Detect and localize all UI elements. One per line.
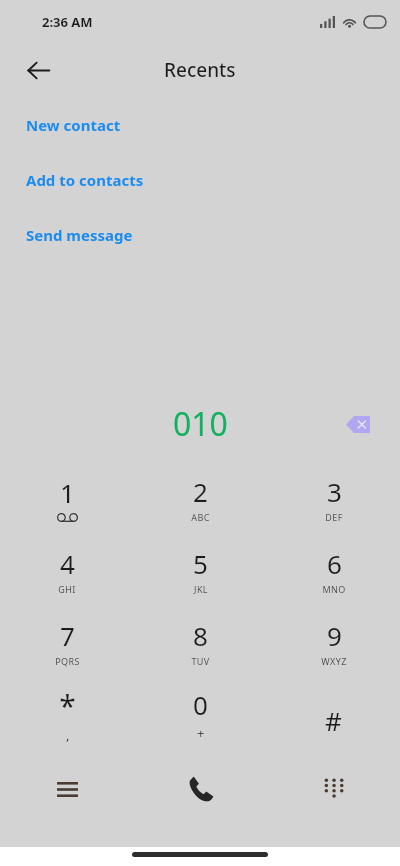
staticText: # bbox=[325, 703, 342, 738]
staticText: ABC bbox=[191, 511, 210, 523]
button[interactable]: Send message bbox=[0, 218, 400, 251]
staticText: 4 bbox=[60, 546, 75, 581]
button[interactable]: Call bbox=[134, 760, 267, 834]
staticText: , bbox=[66, 726, 70, 744]
button[interactable]: Call history bbox=[0, 760, 134, 834]
staticText: JKL bbox=[194, 583, 208, 595]
button[interactable]: 6 bbox=[267, 534, 400, 606]
button[interactable]: New contact bbox=[0, 108, 400, 141]
staticText: 0 bbox=[193, 687, 208, 722]
staticText: 9 bbox=[327, 618, 342, 653]
staticText: Send message bbox=[26, 225, 133, 245]
staticText: GHI bbox=[58, 583, 76, 595]
button[interactable]: # bbox=[267, 678, 400, 750]
staticText: 5 bbox=[193, 546, 208, 581]
button[interactable]: 9 bbox=[267, 606, 400, 678]
staticText: 3 bbox=[327, 474, 342, 509]
staticText: MNO bbox=[322, 583, 346, 595]
staticText: New contact bbox=[26, 115, 121, 135]
button[interactable]: Dialpad bbox=[267, 760, 400, 834]
staticText: Recents bbox=[164, 57, 236, 83]
button[interactable]: * bbox=[0, 678, 134, 750]
staticText: * bbox=[59, 685, 76, 726]
button[interactable]: 1 bbox=[0, 462, 134, 534]
button[interactable]: Back bbox=[14, 46, 62, 94]
staticText: 7 bbox=[60, 618, 75, 653]
button[interactable]: 2 bbox=[134, 462, 267, 534]
staticText: PQRS bbox=[55, 655, 80, 667]
button[interactable]: 3 bbox=[267, 462, 400, 534]
staticText: Add to contacts bbox=[26, 170, 144, 190]
staticText: WXYZ bbox=[321, 655, 347, 667]
staticText: DEF bbox=[325, 511, 343, 523]
button[interactable]: 5 bbox=[134, 534, 267, 606]
button[interactable]: Add to contacts bbox=[0, 163, 400, 196]
button[interactable]: 8 bbox=[134, 606, 267, 678]
staticText: 2:36 AM bbox=[42, 13, 93, 31]
button[interactable]: Backspace bbox=[338, 404, 378, 444]
button[interactable]: 7 bbox=[0, 606, 134, 678]
button[interactable]: 0 bbox=[134, 678, 267, 750]
staticText: + bbox=[197, 724, 205, 742]
staticText: 1 bbox=[60, 475, 75, 510]
staticText: 6 bbox=[327, 546, 342, 581]
staticText: 010 bbox=[173, 402, 228, 446]
button[interactable]: 4 bbox=[0, 534, 134, 606]
staticText: TUV bbox=[191, 655, 210, 667]
staticText: 2 bbox=[193, 474, 208, 509]
staticText: 8 bbox=[193, 618, 208, 653]
